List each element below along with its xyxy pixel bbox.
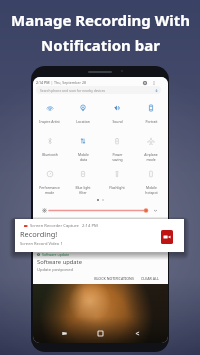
staticText: Sound xyxy=(112,119,123,124)
button[interactable]: Recent apps xyxy=(59,328,70,339)
staticText: Inspire Artist xyxy=(39,119,60,124)
staticText: Screen Recorder Capture xyxy=(30,223,79,229)
staticText: 2:14 PM xyxy=(82,223,98,229)
staticText: Power saving xyxy=(112,152,123,162)
staticText: Software update xyxy=(37,258,82,266)
button[interactable]: Flashlight xyxy=(100,165,134,198)
button[interactable]: Settings xyxy=(142,80,148,86)
button[interactable]: BLOCK NOTIFICATIONS xyxy=(93,274,135,283)
staticText: Airplane mode xyxy=(144,152,158,162)
button[interactable]: Software update xyxy=(37,252,168,273)
staticText: Notification bar xyxy=(41,35,160,55)
staticText: 2:14 PM xyxy=(36,80,50,85)
staticText: CLEAR ALL xyxy=(141,276,159,281)
staticText: Software update xyxy=(42,252,70,257)
staticText: | xyxy=(51,80,53,85)
staticText: BLOCK NOTIFICATIONS xyxy=(94,276,134,281)
staticText: Recording! xyxy=(20,229,58,239)
staticText: Manage Recording With xyxy=(11,10,190,30)
button[interactable]: Blue light filter xyxy=(66,165,100,198)
staticText: Thu, September 28 xyxy=(54,80,86,85)
staticText: Flashlight xyxy=(109,185,125,190)
staticText: Mobile hotspot xyxy=(145,185,158,195)
button[interactable]: Home xyxy=(95,328,106,339)
button[interactable]: Back xyxy=(132,328,143,339)
button[interactable]: Airplane mode xyxy=(134,132,168,165)
button[interactable]: Mobile data xyxy=(66,132,100,165)
button[interactable]: Screen Recorder Capture xyxy=(15,219,184,252)
button[interactable]: Inspire Artist xyxy=(33,99,66,132)
staticText: Performance mode xyxy=(39,185,60,195)
button[interactable]: CLEAR ALL xyxy=(140,274,160,283)
staticText: Search phone and scan for nearby devices xyxy=(40,88,106,92)
staticText: Bluetooth xyxy=(42,152,58,157)
button[interactable]: Sound xyxy=(100,99,134,132)
staticText: Mobile data xyxy=(78,152,89,162)
staticText: Location xyxy=(76,119,90,124)
button[interactable]: Power saving xyxy=(100,132,134,165)
staticText: Screen Record Video 1 xyxy=(20,241,63,247)
button[interactable]: Portrait xyxy=(134,99,168,132)
staticText: Blue light filter xyxy=(75,185,91,195)
button[interactable]: Bluetooth xyxy=(33,132,66,165)
staticText: Update postponed xyxy=(37,267,73,273)
button[interactable]: Search phone and scan for nearby devices xyxy=(36,86,161,94)
staticText: Portrait xyxy=(145,119,158,124)
button[interactable]: More options xyxy=(151,80,156,85)
button[interactable]: Mobile hotspot xyxy=(134,165,168,198)
button[interactable]: Location xyxy=(66,99,100,132)
button[interactable]: Performance mode xyxy=(33,165,66,198)
